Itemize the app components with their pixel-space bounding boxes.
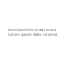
staticText: Lorem ipsum dolor sit amet	[8, 32, 57, 37]
staticText: Lorem ipsum dolor sit amet consect	[8, 28, 56, 32]
